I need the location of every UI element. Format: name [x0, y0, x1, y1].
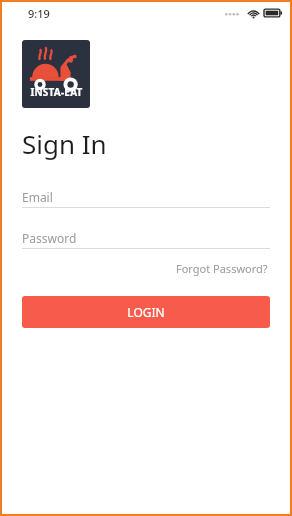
button[interactable]: Email: [22, 186, 270, 208]
staticText: Password: [22, 230, 77, 246]
staticText: Sign In: [22, 126, 107, 161]
staticText: INSTA-EAT: [30, 85, 83, 99]
staticText: 9:19: [28, 6, 50, 21]
staticText: Forgot Password?: [176, 261, 268, 276]
button[interactable]: LOGIN: [22, 296, 270, 328]
staticText: LOGIN: [127, 304, 165, 320]
button[interactable]: Forgot Password?: [174, 259, 270, 278]
button[interactable]: Password: [22, 227, 270, 249]
other: Insta-Eat logo: [22, 40, 90, 108]
staticText: Email: [22, 189, 53, 205]
